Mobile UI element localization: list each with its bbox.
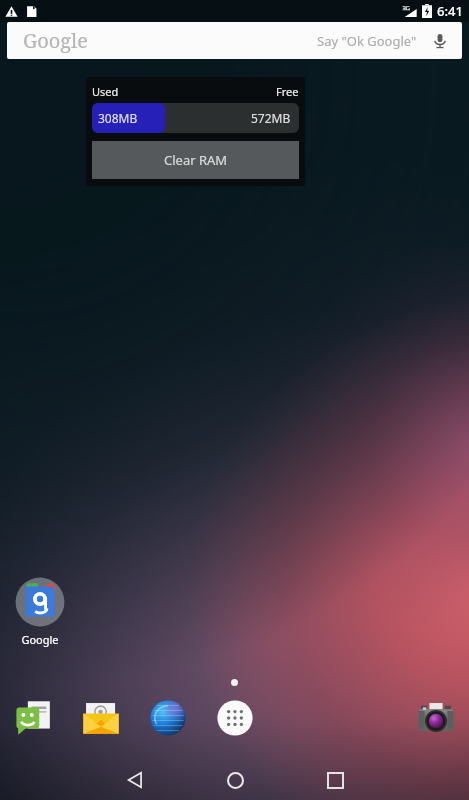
staticText: Clear RAM	[164, 151, 228, 169]
staticText: Used	[92, 84, 119, 99]
button[interactable]: Google	[8, 576, 71, 647]
button[interactable]: Recents	[313, 760, 357, 800]
staticText: 572MB	[251, 110, 291, 126]
staticText: Free	[276, 84, 299, 99]
button[interactable]: Email	[76, 693, 126, 743]
button[interactable]: Messaging	[9, 693, 59, 743]
button[interactable]: Back	[113, 760, 157, 800]
button[interactable]: Home	[213, 760, 257, 800]
staticText: Google	[21, 632, 59, 647]
button[interactable]: Google	[7, 22, 462, 59]
button[interactable]: Camera	[411, 693, 461, 743]
button[interactable]: Clear RAM	[92, 141, 299, 179]
staticText: Say "Ok Google"	[317, 32, 417, 50]
staticText: 6:41	[437, 2, 463, 20]
button[interactable]: All apps	[210, 693, 260, 743]
button[interactable]: Voice search	[430, 31, 450, 51]
staticText: Google	[23, 27, 89, 54]
staticText: 308MB	[98, 110, 138, 126]
button[interactable]: Browser	[143, 693, 193, 743]
